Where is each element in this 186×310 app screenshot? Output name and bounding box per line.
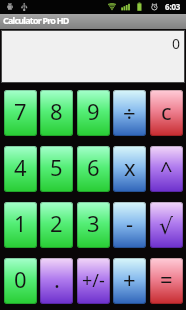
staticText: 9 [87, 96, 100, 126]
staticText: 8 [50, 96, 63, 126]
button[interactable]: 9 [77, 90, 110, 136]
staticText: - [126, 208, 134, 238]
button[interactable]: 4 [4, 146, 37, 192]
staticText: Calculator Pro HD [3, 14, 69, 26]
button[interactable]: 7 [4, 90, 37, 136]
staticText: 0 [171, 34, 180, 53]
staticText: 6 [87, 152, 100, 182]
button[interactable]: - [113, 202, 146, 248]
staticText: ^ [160, 154, 173, 184]
staticText: . [54, 264, 60, 294]
button[interactable]: 3 [77, 202, 110, 248]
button[interactable]: 6 [77, 146, 110, 192]
staticText: 0 [14, 264, 27, 294]
staticText: ÷ [123, 98, 136, 128]
button[interactable]: ^ [150, 146, 183, 192]
staticText: + [123, 264, 136, 294]
button[interactable]: . [40, 258, 73, 304]
staticText: 6:03 [165, 1, 181, 12]
button[interactable]: ÷ [113, 90, 146, 136]
staticText: √ [159, 214, 174, 240]
button[interactable]: √ [150, 202, 183, 248]
staticText: 2 [50, 208, 63, 238]
staticText: x [124, 152, 136, 182]
button[interactable]: 2 [40, 202, 73, 248]
staticText: 7 [14, 96, 27, 126]
staticText: 4 [14, 152, 27, 182]
staticText: +/- [82, 268, 105, 293]
button[interactable]: +/- [77, 258, 110, 304]
button[interactable]: 5 [40, 146, 73, 192]
button[interactable]: = [150, 258, 183, 304]
staticText: 5 [50, 152, 63, 182]
button[interactable]: x [113, 146, 146, 192]
button[interactable]: c [150, 90, 183, 136]
button[interactable]: 1 [4, 202, 37, 248]
staticText: c [161, 96, 172, 126]
button[interactable]: + [113, 258, 146, 304]
staticText: 1 [14, 208, 27, 238]
staticText: = [160, 264, 173, 294]
button[interactable]: 8 [40, 90, 73, 136]
staticText: 3 [87, 208, 100, 238]
button[interactable]: 0 [4, 258, 37, 304]
